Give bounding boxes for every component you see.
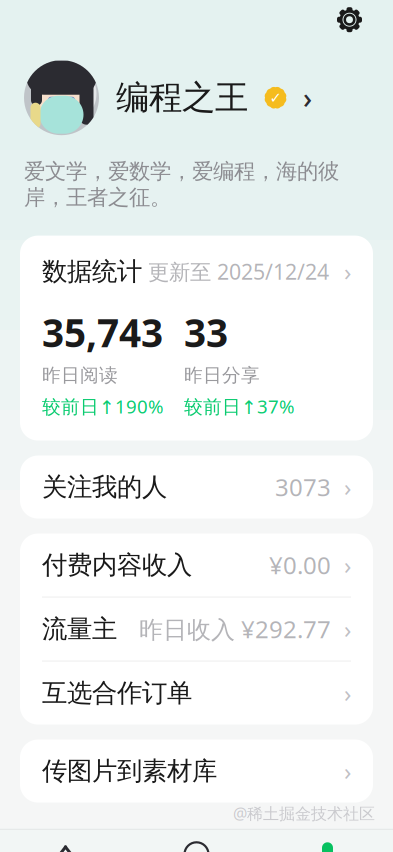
staticText: 关注我的人 [42,471,167,503]
staticText: 35,743 [42,306,163,358]
button[interactable]: 消息 [131,838,262,852]
button[interactable]: 我 [262,838,393,852]
staticText: ¥0.00 [269,549,331,581]
staticText: 传图片到素材库 [42,755,217,787]
staticText: 3073 [275,471,331,503]
staticText: 爱文学，爱数学，爱编程，海的彼岸，王者之征。 [24,158,339,211]
staticText: › [344,613,351,645]
staticText: › [303,79,312,116]
staticText: › [344,549,351,581]
staticText: ✓ [269,89,281,106]
staticText: 昨日阅读 [42,364,118,387]
staticText: 付费内容收入 [42,549,192,581]
staticText: 编程之王 [116,77,248,118]
staticText: 昨日分享 [184,364,260,387]
button[interactable]: Settings [325,0,374,44]
staticText: 昨日收入 ¥292.77 [139,613,331,645]
staticText: 33 [184,306,228,358]
button[interactable]: 付费内容收入 [20,533,373,596]
button[interactable]: 首页 [0,838,131,852]
button[interactable]: 流量主 [20,597,373,660]
staticText: › [344,471,351,503]
staticText: 较前日↑190% [42,394,164,419]
staticText: 流量主 [42,613,117,645]
button[interactable]: 互选合作订单 [20,661,373,724]
button[interactable]: 编程之王 [0,60,393,135]
staticText: 互选合作订单 [42,677,192,709]
staticText: › [344,256,351,287]
button[interactable]: 传图片到素材库 [20,739,373,802]
staticText: 更新至 2025/12/24 [142,257,329,286]
button[interactable]: 数据统计 [20,236,373,440]
staticText: › [344,755,351,787]
staticText: 数据统计 [42,256,142,287]
button[interactable]: 关注我的人 [20,455,373,518]
staticText: 较前日↑37% [184,394,295,419]
staticText: @稀土掘金技术社区 [233,802,375,824]
staticText: › [344,677,351,709]
